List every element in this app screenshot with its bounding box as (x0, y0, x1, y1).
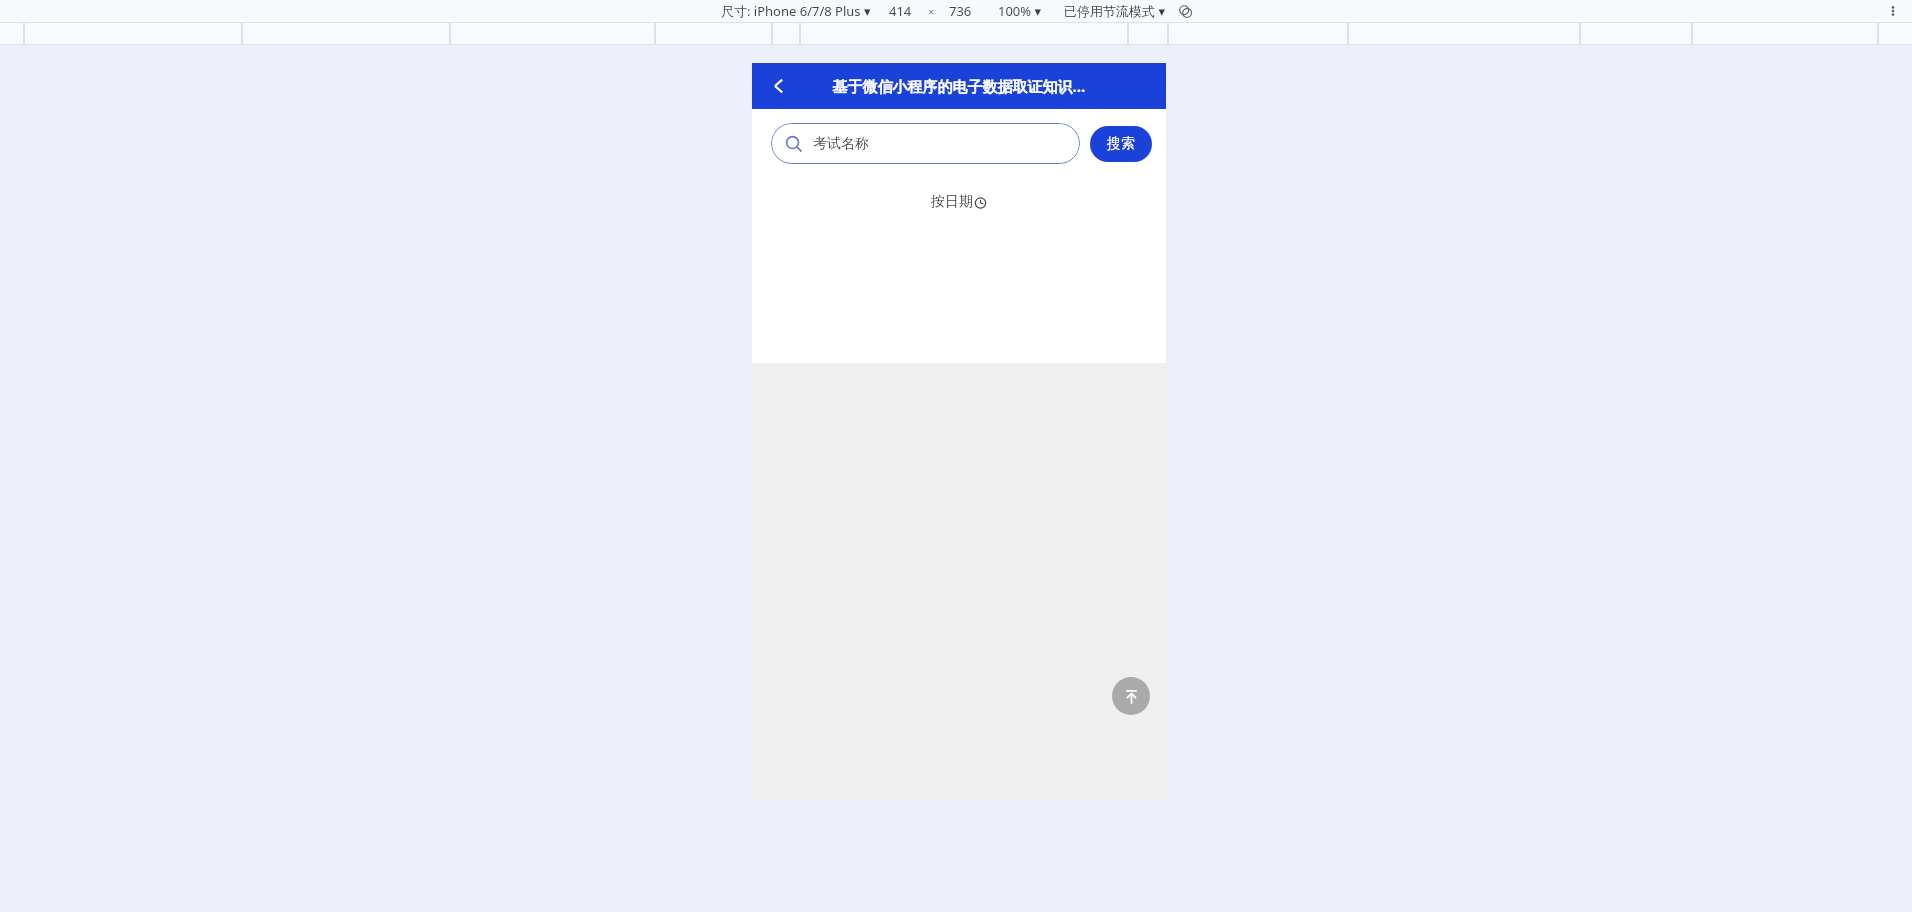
staticText: 基于微信小程序的电子数据取证知识… (802, 76, 1116, 96)
button[interactable]: 搜索 (1090, 126, 1152, 162)
button[interactable]: 尺寸: iPhone 6/7/8 Plus ▾ (719, 2, 873, 20)
staticText: 已停用节流模式 ▾ (1064, 2, 1165, 20)
button[interactable]: Scroll to top (1112, 677, 1150, 715)
staticText: 尺寸: iPhone 6/7/8 Plus ▾ (721, 2, 871, 20)
button[interactable]: More options (1886, 4, 1900, 18)
button[interactable]: 考试名称 (771, 123, 1080, 164)
staticText: 100% ▾ (998, 2, 1042, 20)
staticText: 搜索 (1107, 135, 1135, 153)
button[interactable]: 已停用节流模式 ▾ (1062, 2, 1167, 20)
staticText: 按日期 (931, 193, 973, 211)
button[interactable]: 按日期 (925, 190, 993, 214)
staticText: × (928, 4, 935, 19)
staticText: 736 (949, 2, 972, 20)
staticText: 414 (889, 2, 912, 20)
button[interactable]: 100% ▾ (996, 2, 1044, 20)
button[interactable]: Back (760, 67, 798, 105)
staticText: 考试名称 (813, 135, 869, 153)
button[interactable]: Rotate (1177, 3, 1193, 19)
